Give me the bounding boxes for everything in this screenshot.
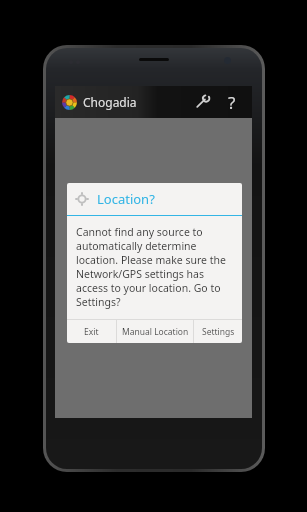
staticText: ? bbox=[228, 91, 236, 114]
button[interactable]: Help bbox=[218, 86, 246, 118]
staticText: Location? bbox=[97, 190, 155, 208]
staticText: Chogadia bbox=[83, 94, 137, 110]
button[interactable]: Exit bbox=[67, 320, 116, 343]
button[interactable]: Settings bbox=[188, 86, 218, 118]
staticText: Cannot find any source to automatically … bbox=[76, 225, 233, 309]
staticText: Exit bbox=[84, 326, 99, 338]
button[interactable]: Manual Location bbox=[117, 320, 193, 343]
button[interactable]: Settings bbox=[194, 320, 242, 343]
button[interactable]: Chogadia bbox=[62, 94, 141, 110]
staticText: Manual Location bbox=[122, 326, 189, 338]
staticText: Settings bbox=[202, 326, 235, 338]
